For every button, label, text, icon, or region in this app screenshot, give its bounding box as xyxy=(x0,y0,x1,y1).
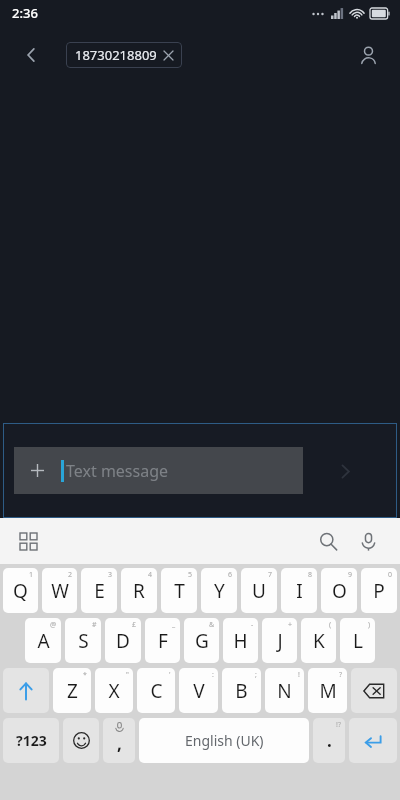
staticText: 2:36 xyxy=(12,4,38,22)
button[interactable]: U xyxy=(241,568,277,613)
staticText: ) xyxy=(368,620,371,630)
staticText: 2 xyxy=(68,570,73,580)
staticText: _ xyxy=(172,620,176,630)
button[interactable]: Keyboard options xyxy=(10,523,46,559)
staticText: ' xyxy=(169,670,171,680)
button[interactable]: S xyxy=(65,618,101,663)
staticText: @ xyxy=(50,620,57,630)
staticText: C xyxy=(150,678,163,704)
staticText: G xyxy=(195,628,209,654)
staticText: 4 xyxy=(148,570,153,580)
button[interactable]: I xyxy=(281,568,317,613)
button[interactable]: Enter xyxy=(349,718,397,763)
staticText: W xyxy=(51,578,69,604)
button[interactable]: M xyxy=(308,668,347,713)
button[interactable]: Text message xyxy=(14,447,303,494)
staticText: . xyxy=(327,729,332,752)
staticText: £ xyxy=(132,620,137,630)
button[interactable]: L xyxy=(340,618,375,663)
button[interactable]: Voice input xyxy=(348,521,388,561)
staticText: L xyxy=(353,628,363,654)
staticText: Z xyxy=(67,678,78,704)
staticText: H xyxy=(233,628,248,654)
button[interactable]: X xyxy=(95,668,133,713)
staticText: N xyxy=(277,678,292,704)
staticText: ?123 xyxy=(16,731,47,750)
button[interactable]: G xyxy=(184,618,219,663)
staticText: O xyxy=(332,578,347,604)
staticText: Q xyxy=(13,578,28,604)
staticText: J xyxy=(277,628,283,654)
staticText: I xyxy=(296,578,303,604)
button[interactable]: Emoji xyxy=(63,718,99,763)
button[interactable]: O xyxy=(321,568,357,613)
button[interactable]: ?123 xyxy=(3,718,59,763)
staticText: 9 xyxy=(348,570,353,580)
staticText: B xyxy=(235,678,248,704)
button[interactable]: Contact xyxy=(350,37,386,73)
button[interactable]: English (UK) xyxy=(139,718,309,763)
staticText: , xyxy=(117,732,122,755)
button[interactable]: J xyxy=(262,618,297,663)
button[interactable]: T xyxy=(161,568,197,613)
staticText: X xyxy=(108,678,120,704)
staticText: R xyxy=(133,578,145,604)
button[interactable]: E xyxy=(81,568,117,613)
button[interactable]: K xyxy=(301,618,336,663)
staticText: 5 xyxy=(188,570,193,580)
staticText: V xyxy=(193,678,205,704)
button[interactable]: N xyxy=(265,668,304,713)
button[interactable]: V xyxy=(179,668,218,713)
button[interactable]: , xyxy=(103,718,135,763)
staticText: Y xyxy=(214,578,225,604)
staticText: M xyxy=(319,678,337,704)
staticText: & xyxy=(209,620,215,630)
button[interactable]: 18730218809 xyxy=(66,42,182,68)
staticText: " xyxy=(126,670,129,680)
staticText: S xyxy=(78,628,89,654)
staticText: - xyxy=(251,620,254,630)
staticText: ? xyxy=(339,670,343,680)
staticText: T xyxy=(174,578,185,604)
staticText: 3 xyxy=(108,570,113,580)
button[interactable]: Back xyxy=(14,38,48,72)
button[interactable]: F xyxy=(145,618,180,663)
button[interactable]: R xyxy=(121,568,157,613)
button[interactable]: Backspace xyxy=(351,668,397,713)
staticText: 0 xyxy=(388,570,393,580)
staticText: English (UK) xyxy=(185,731,264,750)
staticText: U xyxy=(252,578,266,604)
staticText: A xyxy=(37,628,50,654)
button[interactable]: D xyxy=(105,618,141,663)
button[interactable]: P xyxy=(361,568,397,613)
button[interactable]: . xyxy=(313,718,345,763)
button[interactable]: Z xyxy=(53,668,91,713)
button[interactable]: Shift xyxy=(3,668,49,713)
staticText: E xyxy=(94,578,105,604)
staticText: ! xyxy=(298,670,300,680)
staticText: ; xyxy=(255,670,257,680)
staticText: Text message xyxy=(66,460,169,482)
staticText: # xyxy=(92,620,97,630)
staticText: P xyxy=(373,578,385,604)
button[interactable]: Search xyxy=(308,521,348,561)
button[interactable]: A xyxy=(25,618,61,663)
staticText: : xyxy=(212,670,214,680)
staticText: K xyxy=(313,628,325,654)
staticText: !? xyxy=(336,720,341,730)
button[interactable]: Q xyxy=(3,568,38,613)
staticText: * xyxy=(83,670,87,680)
button[interactable]: H xyxy=(223,618,258,663)
staticText: 8 xyxy=(308,570,313,580)
button[interactable]: C xyxy=(137,668,175,713)
staticText: 6 xyxy=(228,570,233,580)
staticText: 18730218809 xyxy=(75,46,157,64)
staticText: ( xyxy=(329,620,332,630)
staticText: 1 xyxy=(29,570,34,580)
staticText: + xyxy=(288,620,293,630)
button[interactable]: W xyxy=(42,568,77,613)
button[interactable]: Y xyxy=(201,568,237,613)
button[interactable]: B xyxy=(222,668,261,713)
staticText: 7 xyxy=(268,570,273,580)
